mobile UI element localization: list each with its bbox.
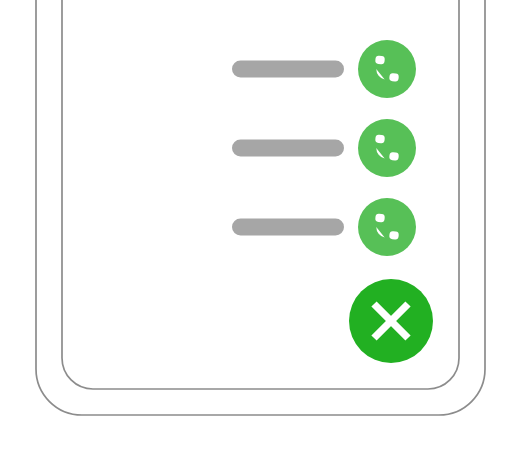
button[interactable]: Close speed dial [349,279,433,363]
button[interactable]: Call third contact [358,198,416,256]
button[interactable]: Call second contact [358,119,416,177]
button[interactable]: Call first contact [358,40,416,98]
